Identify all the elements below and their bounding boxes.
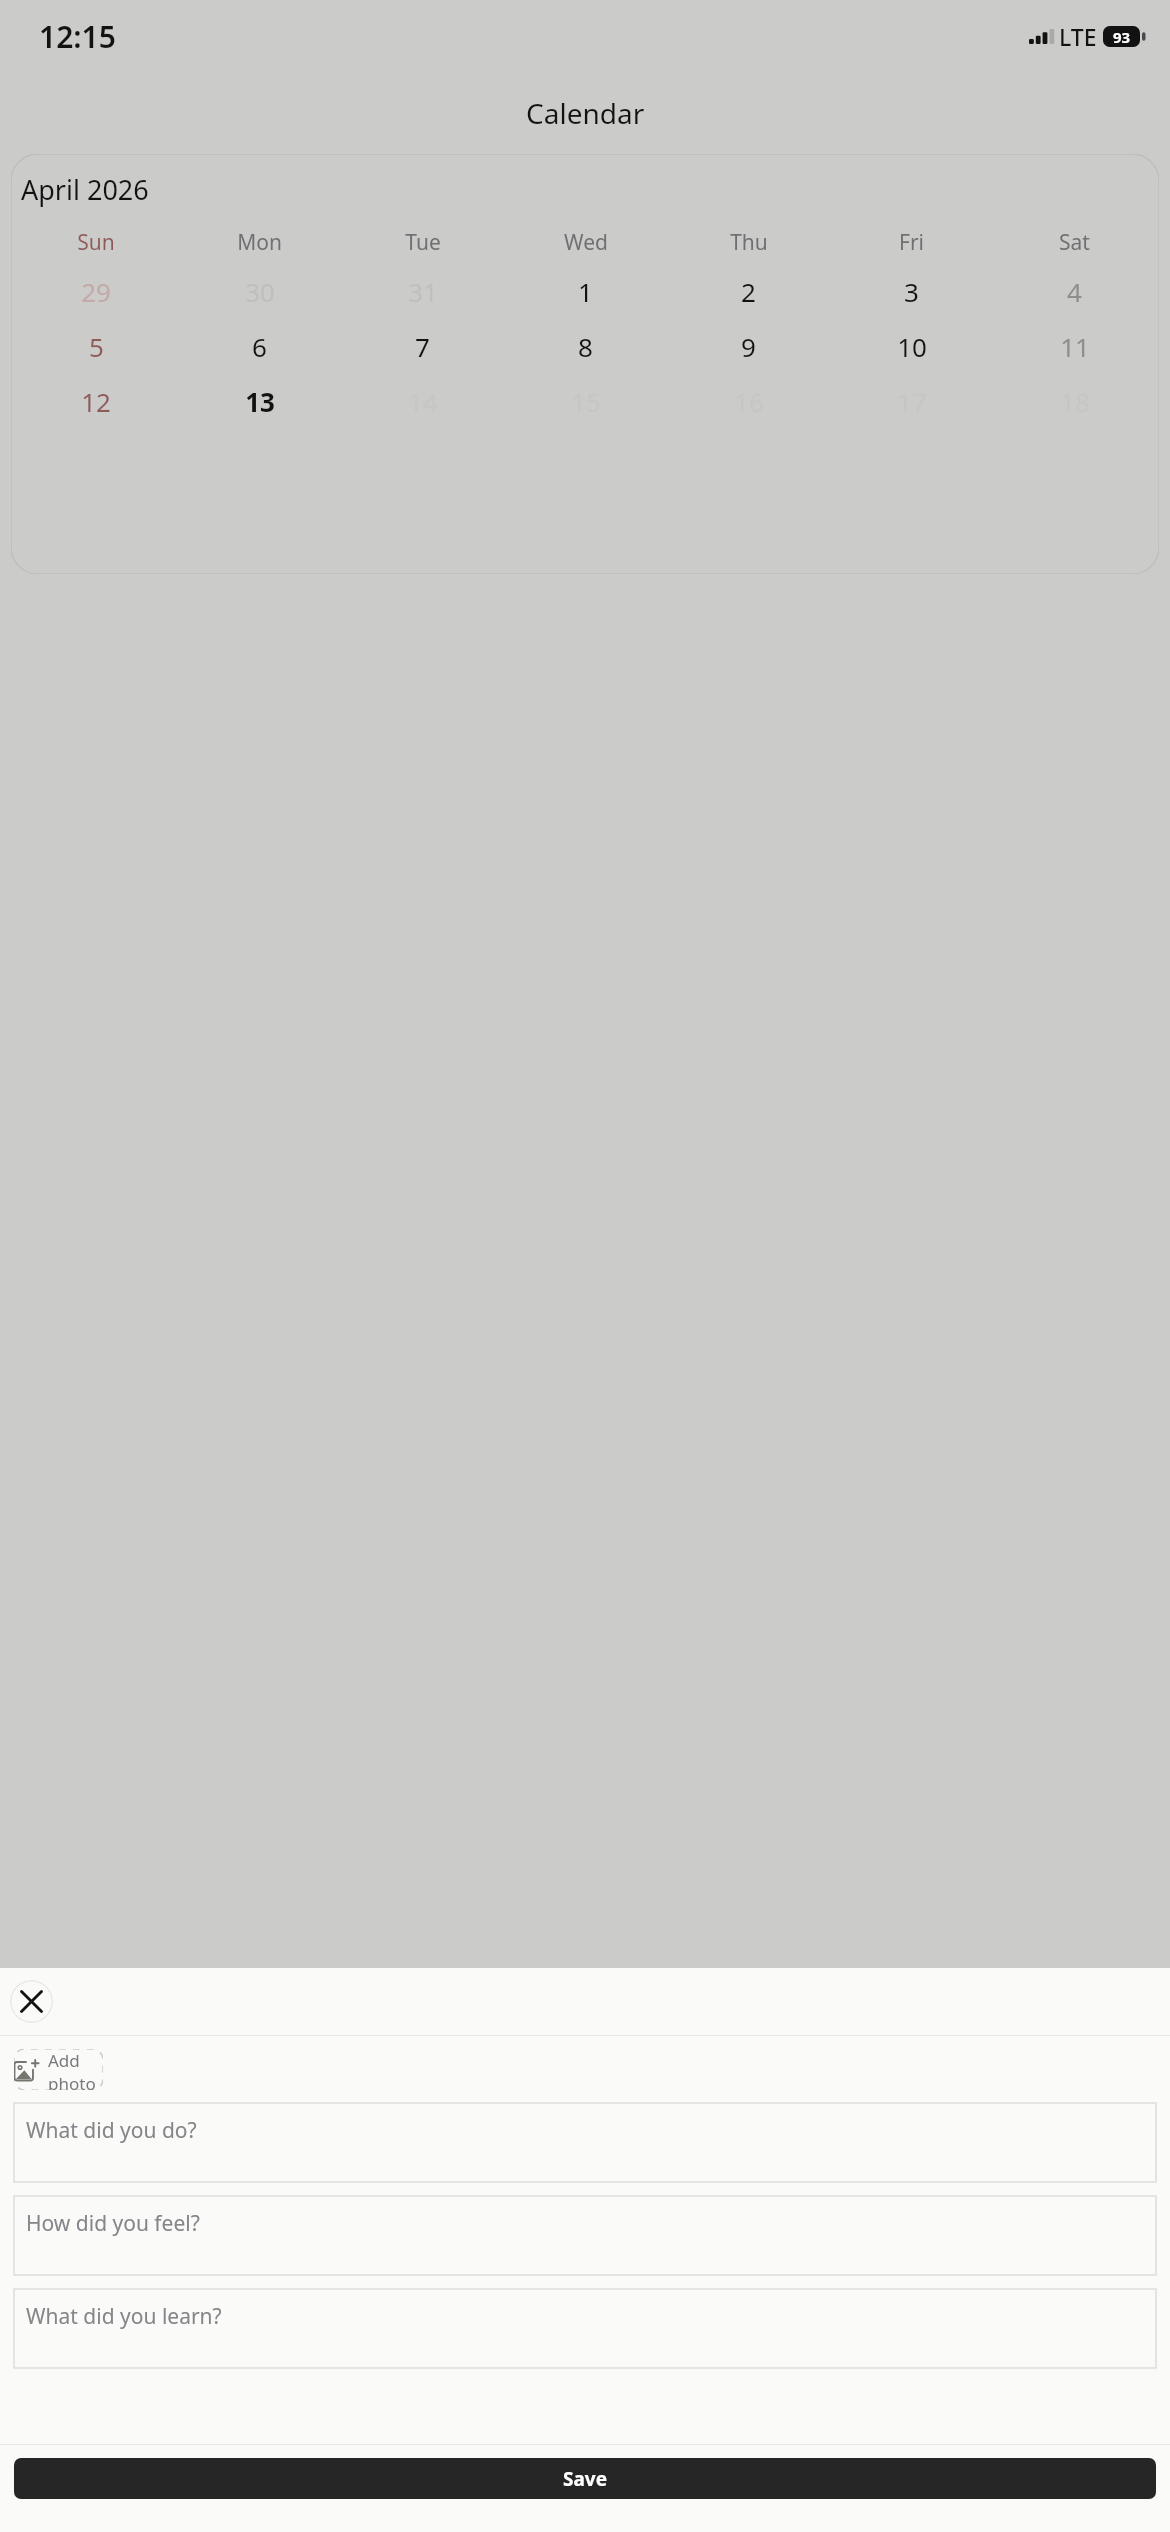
staticText: Save [563,2466,608,2492]
staticText: 7 [415,329,430,364]
staticText: What did you learn? [26,2302,222,2331]
staticText: Wed [564,228,608,257]
staticText: LTE [1059,21,1097,52]
button[interactable]: 2 [667,274,830,309]
staticText: 10 [897,329,927,364]
staticText: 6 [252,329,267,364]
button[interactable]: 3 [830,274,993,309]
staticText: 12:15 [39,16,116,57]
staticText: 29 [81,274,111,309]
button[interactable]: 5 [14,329,178,364]
button[interactable]: What did you do? [14,2103,1156,2182]
button[interactable]: 7 [341,329,504,364]
button[interactable]: 4 [993,274,1156,309]
staticText: Fri [899,228,924,257]
staticText: 12 [81,384,111,419]
staticText: Calendar [526,94,645,132]
staticText: 93 [1113,27,1131,47]
staticText: 2 [741,274,756,309]
staticText: 13 [245,384,275,419]
button[interactable]: 9 [667,329,830,364]
button[interactable]: Add photo [14,2049,103,2090]
staticText: What did you do? [26,2116,197,2145]
button[interactable]: 11 [993,329,1156,364]
staticText: 1 [578,274,593,309]
button[interactable]: How did you feel? [14,2196,1156,2275]
staticText: Mon [237,228,282,257]
button[interactable]: 6 [178,329,341,364]
staticText: Thu [730,228,768,257]
staticText: 11 [1060,329,1090,364]
button[interactable]: 1 [504,274,667,309]
button[interactable]: 12 [14,384,178,419]
staticText: 4 [1067,274,1082,309]
staticText: How did you feel? [26,2209,200,2238]
staticText: 3 [904,274,919,309]
staticText: 30 [245,274,275,309]
button[interactable]: Close [10,1980,53,2023]
staticText: 9 [741,329,756,364]
staticText: 31 [408,274,438,309]
button[interactable]: Save [14,2458,1156,2499]
button[interactable]: What did you learn? [14,2289,1156,2368]
staticText: Sun [77,228,115,257]
staticText: 8 [578,329,593,364]
button[interactable]: 13 [178,384,341,419]
button[interactable]: 10 [830,329,993,364]
staticText: Sat [1059,228,1090,257]
staticText: April 2026 [21,171,149,208]
staticText: Add photo [48,2049,103,2090]
staticText: 5 [89,329,104,364]
button[interactable]: 8 [504,329,667,364]
button[interactable]: 29 [14,274,178,309]
staticText: Tue [405,228,441,257]
